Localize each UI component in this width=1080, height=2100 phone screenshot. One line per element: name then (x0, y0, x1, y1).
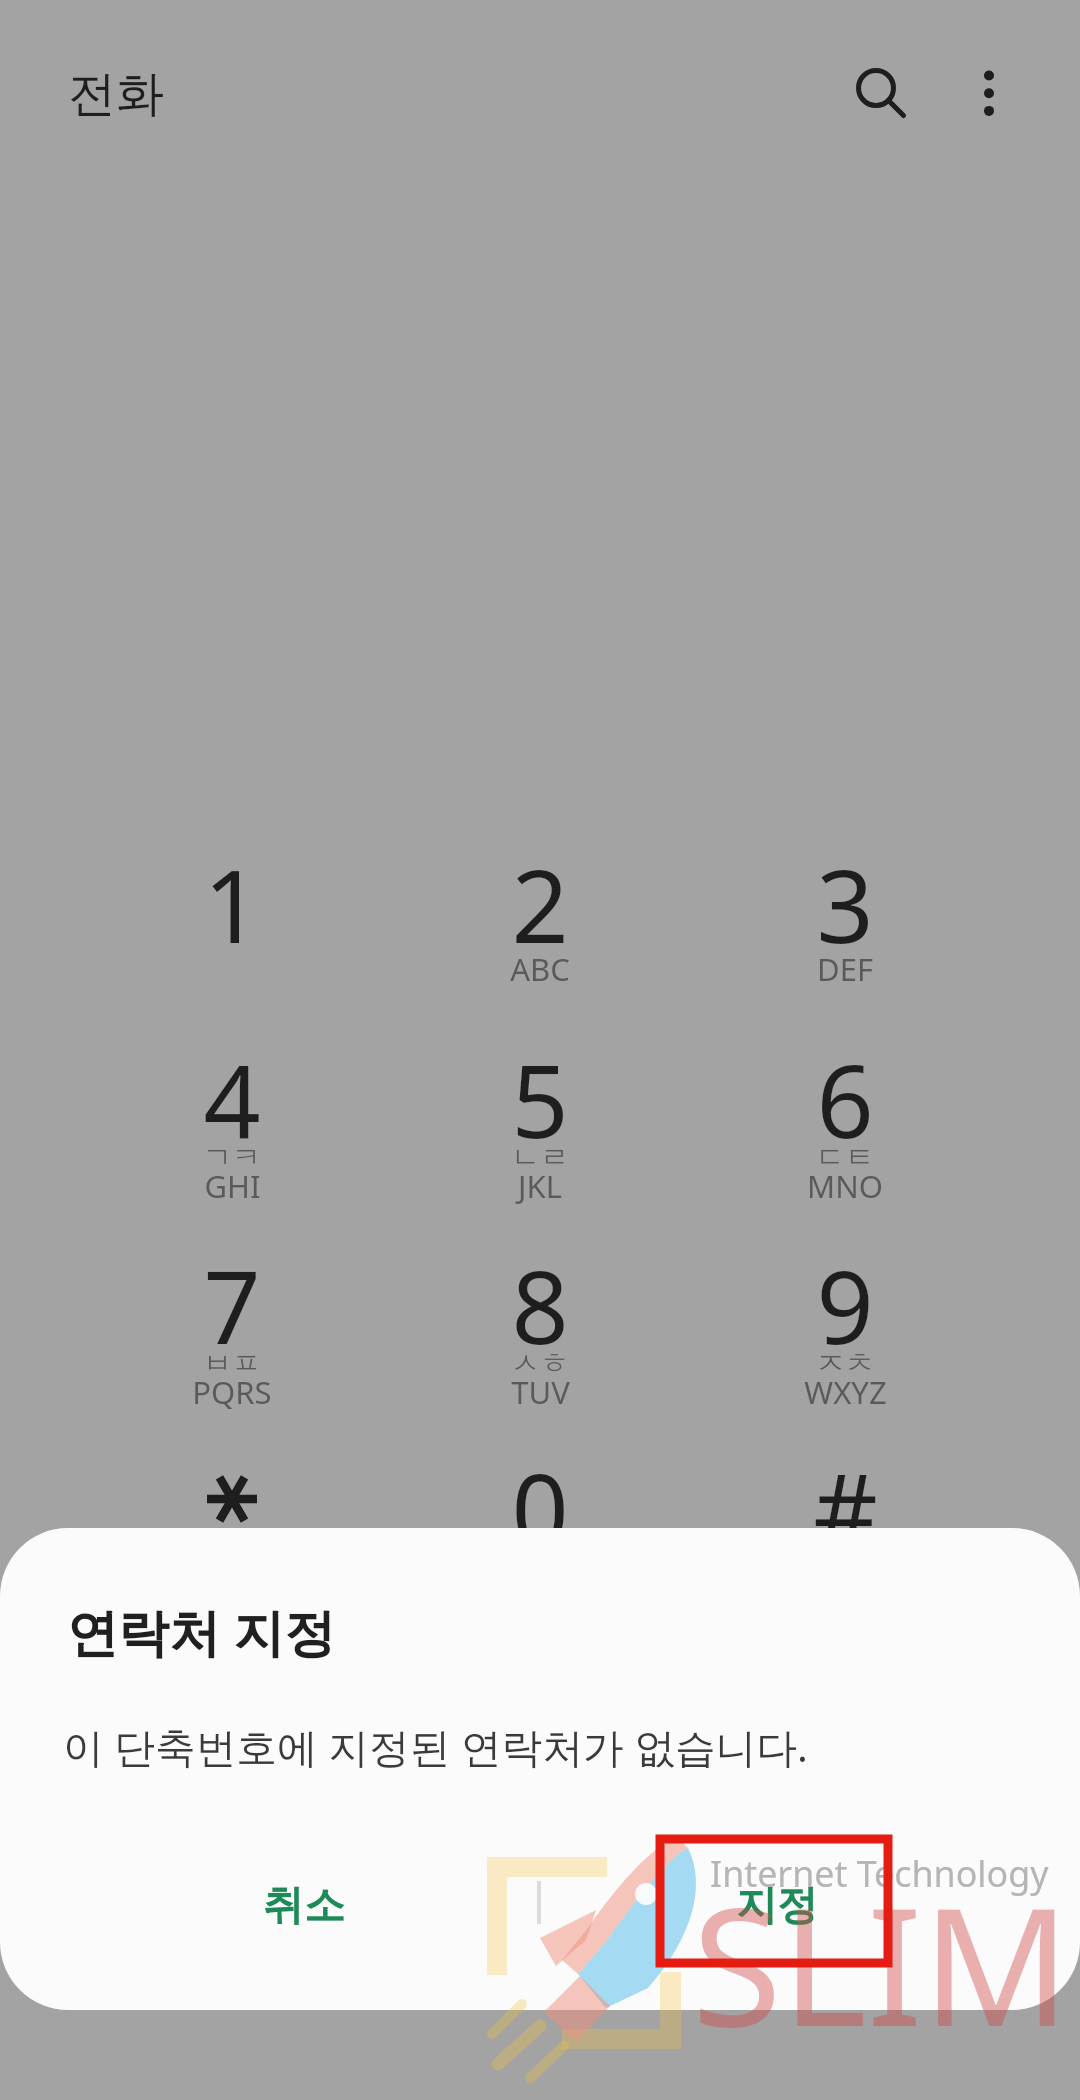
staticText: 3 (816, 836, 874, 972)
button[interactable]: # (692, 1445, 998, 1641)
staticText: ㄴㄹ (511, 1139, 569, 1176)
button[interactable]: 4 (79, 1036, 385, 1232)
button[interactable]: Star (79, 1445, 385, 1641)
button[interactable]: More options (928, 27, 1049, 148)
button[interactable]: 0 (387, 1445, 693, 1641)
button[interactable]: 3 (692, 841, 998, 1037)
staticText: ㄱㅋ (203, 1139, 261, 1176)
staticText: 1 (203, 836, 261, 972)
button[interactable]: 1 (79, 841, 385, 1037)
button[interactable]: Search (815, 27, 936, 148)
staticText: 5 (511, 1031, 569, 1167)
staticText: 지정 (736, 1880, 818, 1932)
staticText: PQRS (192, 1371, 272, 1413)
staticText: ABC (510, 948, 570, 990)
staticText: TUV (511, 1371, 570, 1413)
staticText: MNO (807, 1165, 883, 1207)
staticText: JKL (518, 1165, 562, 1207)
button[interactable]: 8 (387, 1242, 693, 1438)
staticText: 9 (816, 1237, 874, 1373)
staticText: 7 (203, 1237, 261, 1373)
button[interactable]: 취소 (186, 1840, 422, 1972)
staticText: 이 단축번호에 지정된 연락처가 없습니다. (63, 1718, 808, 1774)
staticText: GHI (204, 1165, 261, 1207)
button[interactable]: 지정 (659, 1840, 895, 1972)
staticText: 취소 (263, 1880, 345, 1932)
staticText: 연락처 지정 (67, 1596, 336, 1666)
button[interactable]: 6 (692, 1036, 998, 1232)
staticText: 전화 (68, 64, 164, 124)
staticText: # (813, 1440, 878, 1576)
staticText: SLIM (692, 1852, 1070, 2074)
staticText: ㄷㅌ (816, 1139, 874, 1176)
staticText: 4 (203, 1031, 261, 1167)
staticText: ㅂㅍ (203, 1345, 261, 1382)
staticText: Internet Technology (710, 1849, 1049, 1898)
staticText: DEF (817, 948, 873, 990)
button[interactable]: 5 (387, 1036, 693, 1232)
button[interactable]: 9 (692, 1242, 998, 1438)
button[interactable]: 2 (387, 841, 693, 1037)
staticText: ㅅㅎ (511, 1345, 569, 1382)
staticText: 6 (816, 1031, 874, 1167)
staticText: 2 (511, 836, 569, 972)
staticText: 8 (511, 1237, 569, 1373)
staticText: 0 (511, 1440, 569, 1576)
staticText: WXYZ (804, 1371, 887, 1413)
staticText: ㅈㅊ (816, 1345, 874, 1382)
button[interactable]: 7 (79, 1242, 385, 1438)
